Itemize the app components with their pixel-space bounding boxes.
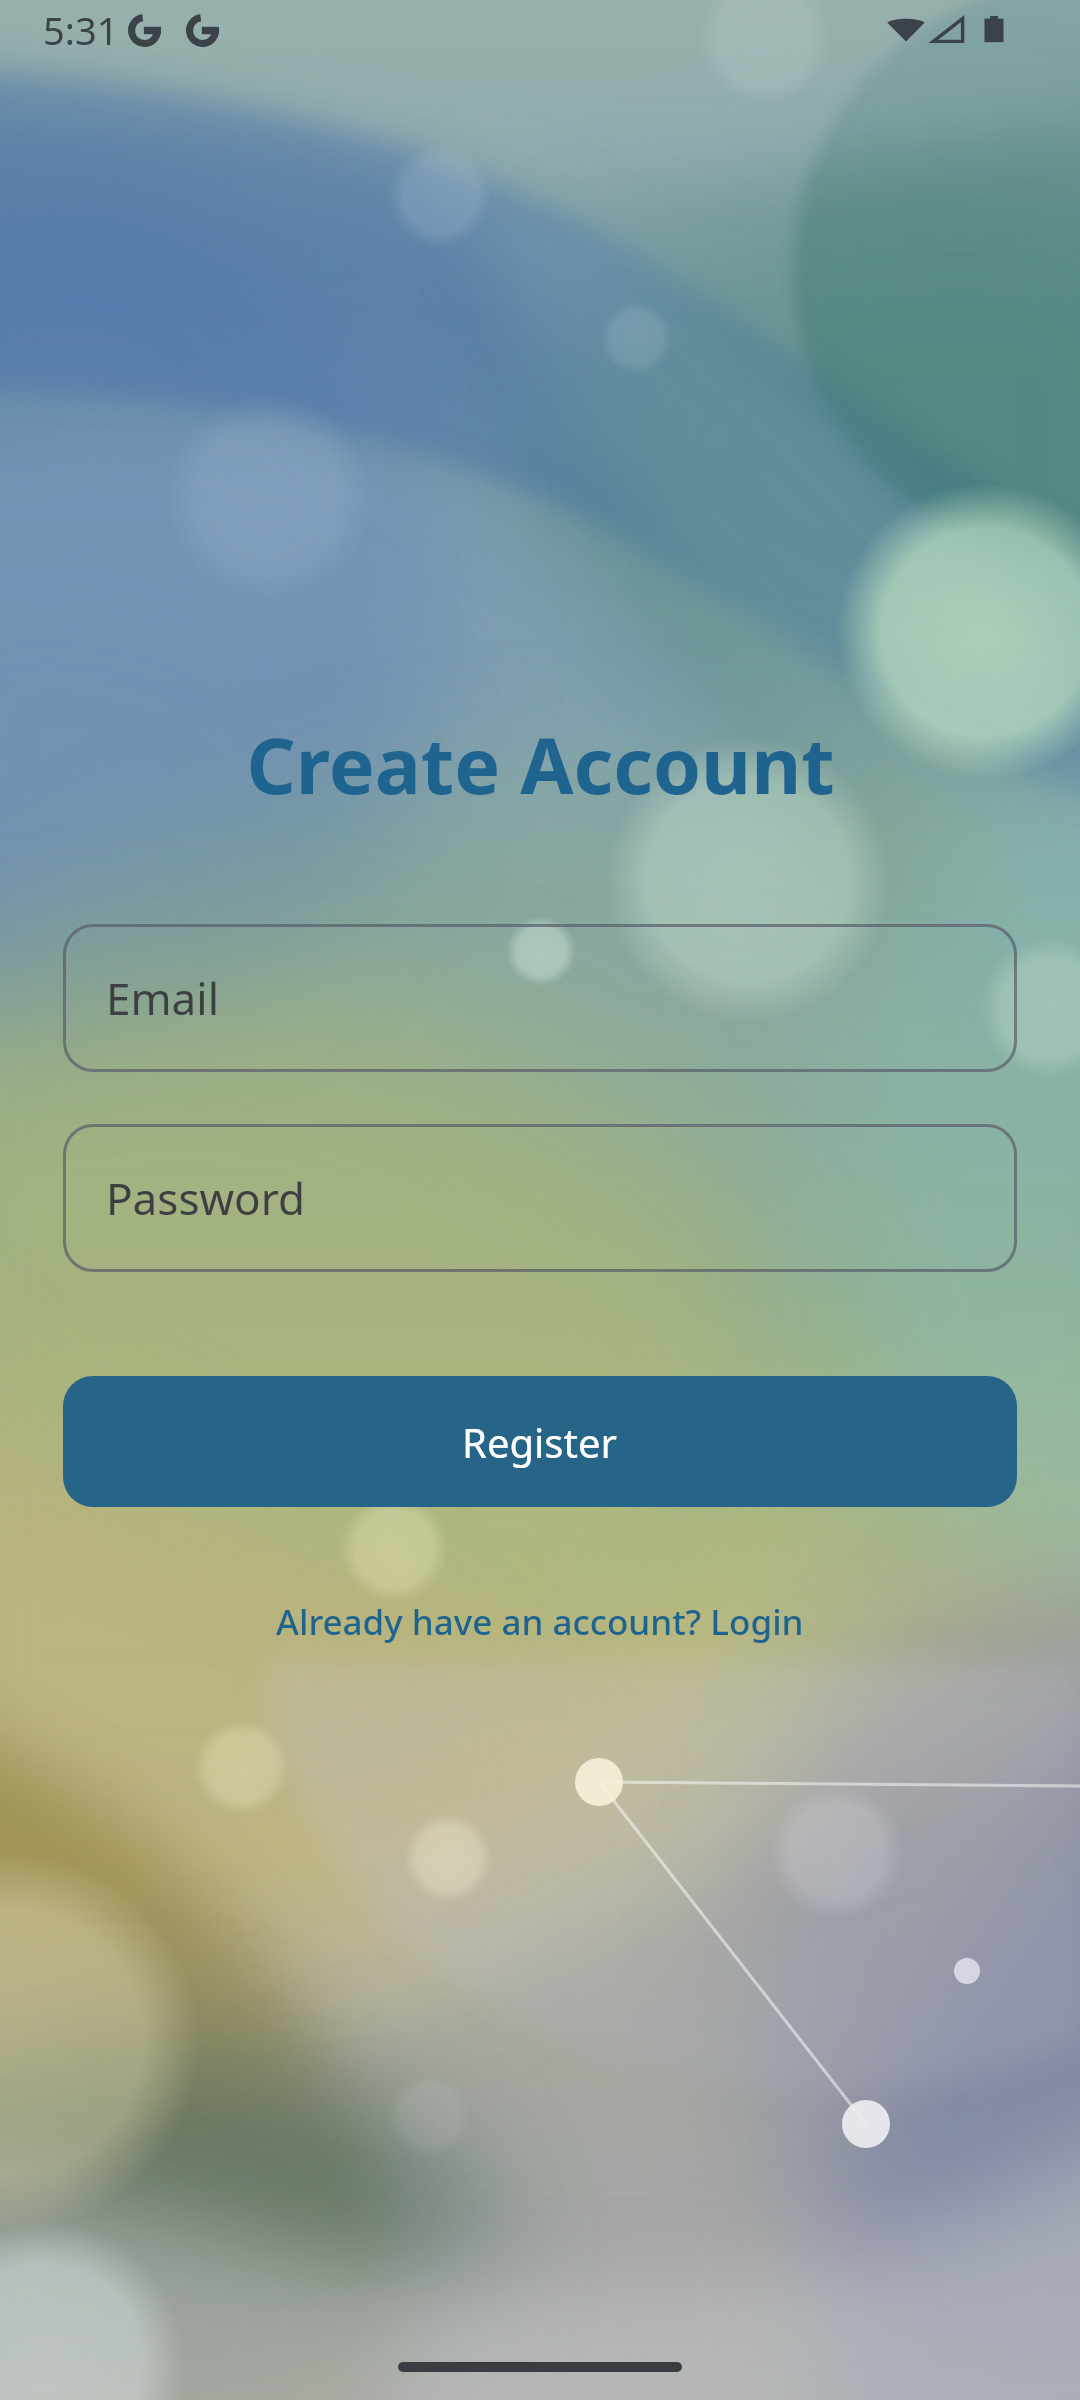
button[interactable]: Password <box>63 1124 1017 1272</box>
staticText: Create Account <box>246 712 835 817</box>
other: Battery <box>980 11 1008 49</box>
staticText: Password <box>106 1168 306 1228</box>
staticText: Email <box>106 968 219 1028</box>
other: Mobile signal <box>931 11 965 49</box>
staticText: 5:31 <box>43 4 119 56</box>
button[interactable]: Register <box>63 1376 1017 1507</box>
other: Google <box>128 14 161 47</box>
button[interactable]: Email <box>63 924 1017 1072</box>
other: Wi-Fi <box>886 11 926 49</box>
staticText: Register <box>462 1415 618 1469</box>
other: Google <box>186 14 219 47</box>
staticText: Already have an account? Login <box>276 1598 804 1646</box>
button[interactable]: Already have an account? Login <box>0 1585 1080 1659</box>
